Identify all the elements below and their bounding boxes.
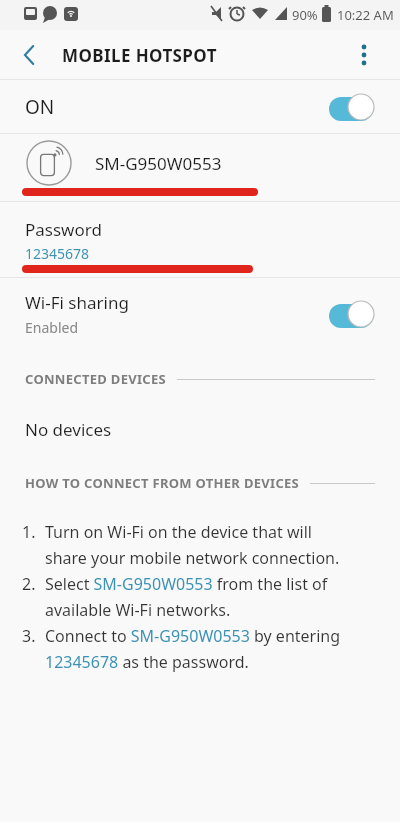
staticText: 1. xyxy=(22,521,36,543)
staticText: 10:22 AM xyxy=(337,6,394,24)
staticText: HOW TO CONNECT FROM OTHER DEVICES xyxy=(25,474,300,492)
staticText: available Wi-Fi networks. xyxy=(45,599,231,621)
staticText: Select SM-G950W0553 from the list of xyxy=(45,573,328,595)
button[interactable] xyxy=(12,37,48,73)
staticText: Turn on Wi-Fi on the device that will xyxy=(45,521,312,543)
staticText: 90% xyxy=(292,6,318,24)
button[interactable]: Wi-Fi sharing xyxy=(0,286,400,342)
button[interactable]: ON xyxy=(0,80,400,133)
staticText: Connect to SM-G950W0553 by entering xyxy=(45,625,341,647)
staticText: 2. xyxy=(22,573,36,595)
staticText: 12345678 xyxy=(25,244,90,263)
staticText: ON xyxy=(25,94,55,120)
staticText: Wi-Fi sharing xyxy=(25,291,129,314)
button[interactable]: Password xyxy=(25,218,102,241)
button[interactable] xyxy=(346,37,382,73)
staticText: 3. xyxy=(22,625,36,647)
button[interactable]: SM-G950W0553 xyxy=(0,134,400,194)
button[interactable] xyxy=(329,93,375,121)
staticText: No devices xyxy=(25,418,112,441)
staticText: MOBILE HOTSPOT xyxy=(62,44,217,67)
button[interactable] xyxy=(329,300,375,328)
staticText: CONNECTED DEVICES xyxy=(25,370,167,388)
staticText: SM-G950W0553 xyxy=(95,152,222,175)
staticText: 12345678 as the password. xyxy=(45,651,249,673)
staticText: share your mobile network connection. xyxy=(45,547,340,569)
staticText: Enabled xyxy=(25,318,79,337)
